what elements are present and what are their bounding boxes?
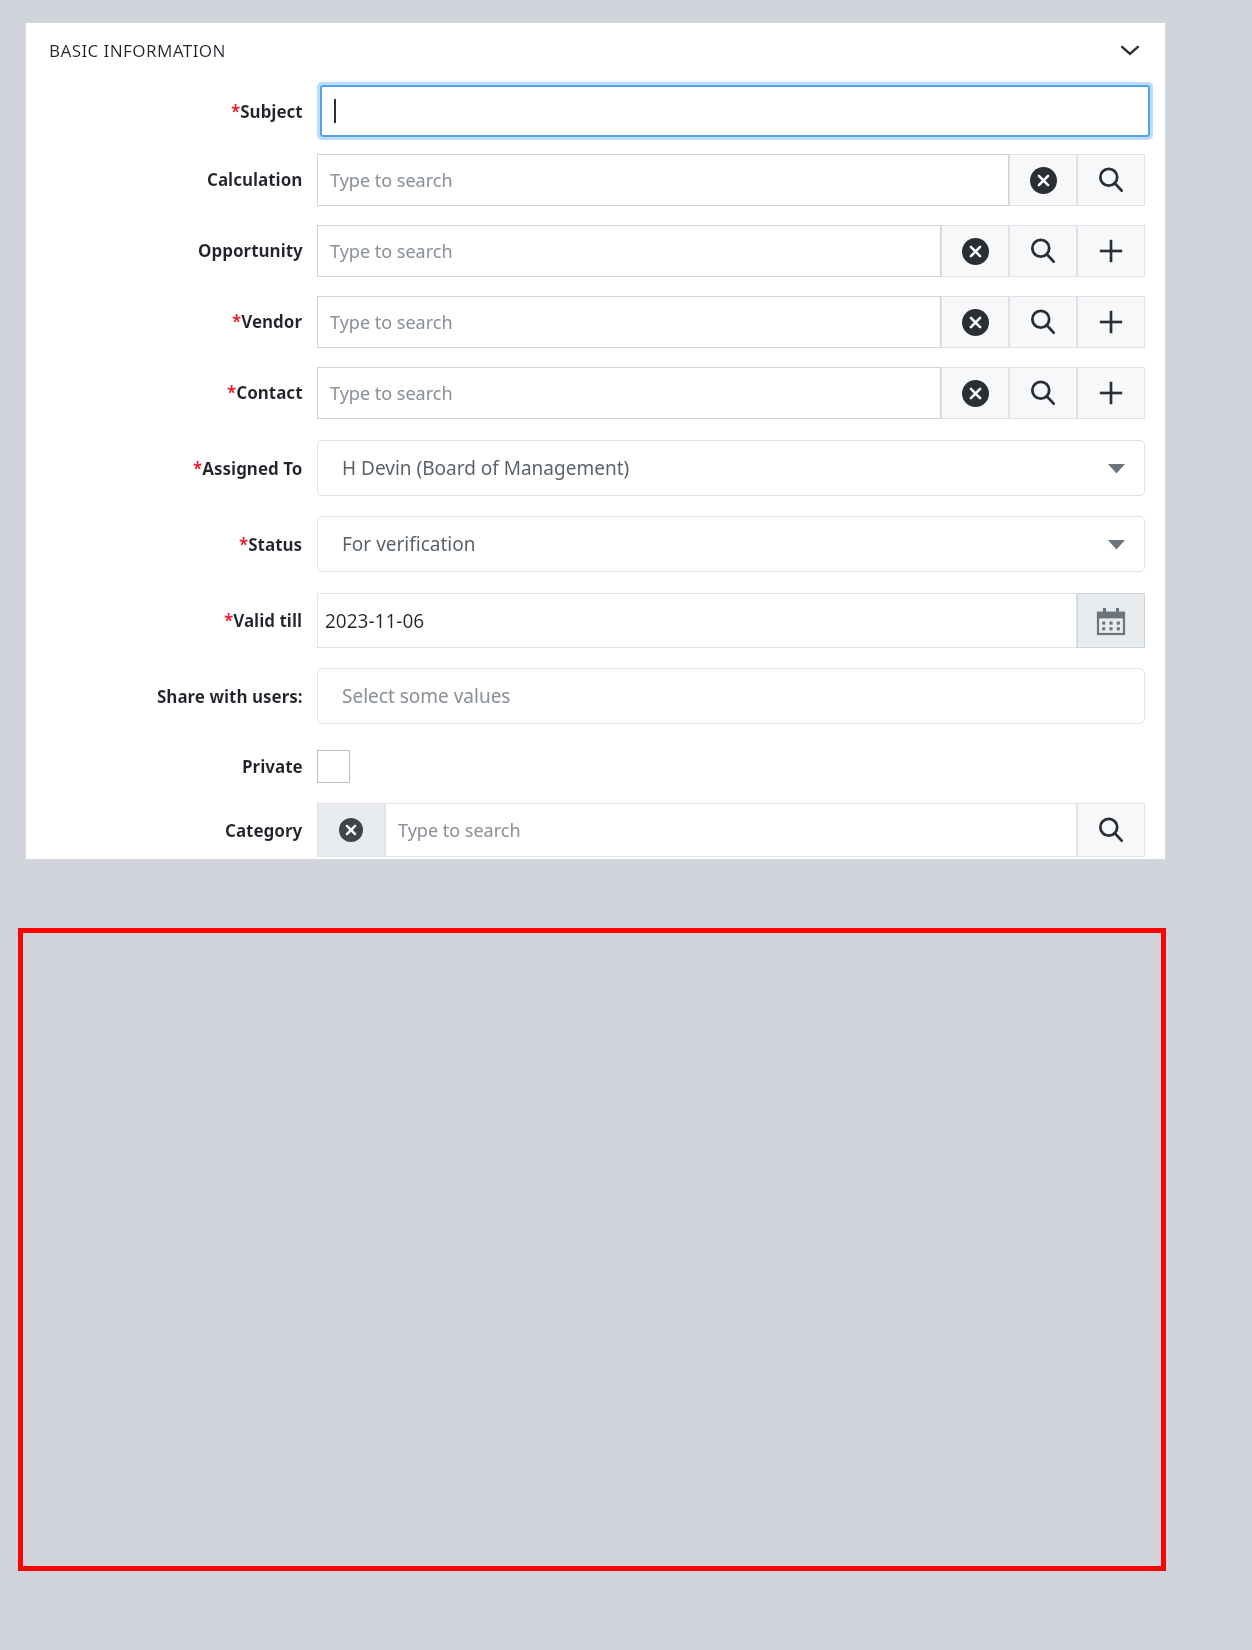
staticText: Opportunity	[198, 239, 303, 262]
button[interactable]: Search	[1009, 296, 1077, 348]
button[interactable]: Clear	[941, 367, 1009, 419]
staticText: Select some values	[342, 683, 511, 709]
button[interactable]: H Devin (Board of Management)	[317, 440, 1145, 496]
button[interactable]: Clear	[941, 225, 1009, 277]
staticText: Type to search	[330, 168, 453, 193]
staticText: *Vendor	[232, 310, 303, 333]
button[interactable]: Pick date	[1077, 593, 1145, 648]
button[interactable]: Search	[1009, 367, 1077, 419]
staticText: Type to search	[330, 381, 453, 406]
staticText: *Subject	[231, 100, 303, 123]
staticText: Type to search	[330, 310, 453, 335]
staticText: Category	[225, 819, 303, 842]
staticText: Type to search	[398, 818, 521, 843]
button[interactable]: Type to search	[385, 803, 1077, 857]
staticText: Calculation	[207, 168, 303, 191]
button[interactable]	[320, 85, 1150, 137]
button[interactable]: Clear	[941, 296, 1009, 348]
button[interactable]: Add	[1077, 225, 1145, 277]
button[interactable]: Search	[1077, 154, 1145, 206]
button[interactable]: Private checkbox	[317, 750, 350, 783]
staticText: *Valid till	[224, 609, 303, 632]
staticText: *Assigned To	[193, 457, 303, 480]
button[interactable]: For verification	[317, 516, 1145, 572]
button[interactable]: Add	[1077, 367, 1145, 419]
staticText: 2023-11-06	[325, 608, 425, 634]
staticText: *Contact	[227, 381, 303, 404]
staticText: *Status	[239, 533, 303, 556]
button[interactable]: Collapse section	[1108, 28, 1152, 72]
button[interactable]: Type to search	[317, 367, 941, 419]
staticText: Private	[242, 755, 303, 778]
button[interactable]: 2023-11-06	[317, 593, 1077, 648]
button[interactable]: Type to search	[317, 296, 941, 348]
staticText: H Devin (Board of Management)	[342, 455, 630, 481]
staticText: For verification	[342, 531, 476, 557]
button[interactable]: Clear category	[317, 803, 385, 857]
staticText: BASIC INFORMATION	[49, 39, 226, 62]
button[interactable]: Clear	[1009, 154, 1077, 206]
button[interactable]: Add	[1077, 296, 1145, 348]
button[interactable]: Search	[1009, 225, 1077, 277]
button[interactable]: Type to search	[317, 225, 941, 277]
button[interactable]: Select some values	[317, 668, 1145, 724]
button[interactable]: Type to search	[317, 154, 1009, 206]
button[interactable]: Search category	[1077, 803, 1145, 857]
staticText: Type to search	[330, 239, 453, 264]
staticText: Share with users:	[157, 685, 303, 708]
